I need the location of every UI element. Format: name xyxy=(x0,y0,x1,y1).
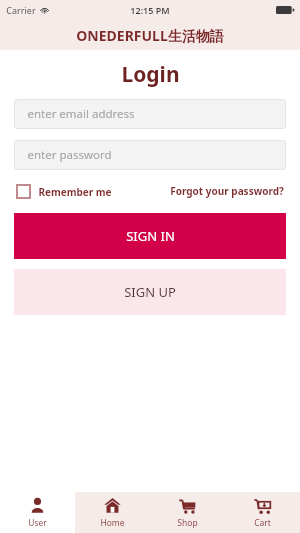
staticText: Forgot your password? xyxy=(170,184,284,198)
button[interactable]: Home xyxy=(75,492,150,533)
staticText: Cart xyxy=(254,517,271,529)
button[interactable]: Cart xyxy=(225,492,300,533)
staticText: ONEDERFULL生活物語 xyxy=(76,26,224,45)
staticText: Carrier xyxy=(6,4,36,16)
staticText: SIGN UP xyxy=(124,283,176,301)
button[interactable]: SIGN IN xyxy=(14,213,286,259)
staticText: enter email address xyxy=(27,106,135,122)
other: User xyxy=(29,497,46,514)
button[interactable]: Shop xyxy=(150,492,225,533)
staticText: 12:15 PM xyxy=(130,4,170,16)
staticText: Login xyxy=(121,60,180,89)
staticText: SIGN IN xyxy=(126,227,175,245)
button[interactable]: Forgot your password? xyxy=(170,184,284,198)
button[interactable]: enter email address xyxy=(14,99,286,129)
other: Home xyxy=(104,497,121,514)
staticText: Remember me xyxy=(38,185,112,199)
button[interactable]: Remember me xyxy=(16,184,112,199)
other: Cart xyxy=(254,497,271,514)
staticText: Home xyxy=(100,517,125,529)
staticText: Shop xyxy=(177,517,198,529)
other: Shop xyxy=(179,497,196,514)
button[interactable]: User xyxy=(0,492,75,533)
staticText: enter password xyxy=(27,147,112,163)
button[interactable]: enter password xyxy=(14,140,286,170)
staticText: User xyxy=(28,517,47,529)
button[interactable]: SIGN UP xyxy=(14,269,286,315)
